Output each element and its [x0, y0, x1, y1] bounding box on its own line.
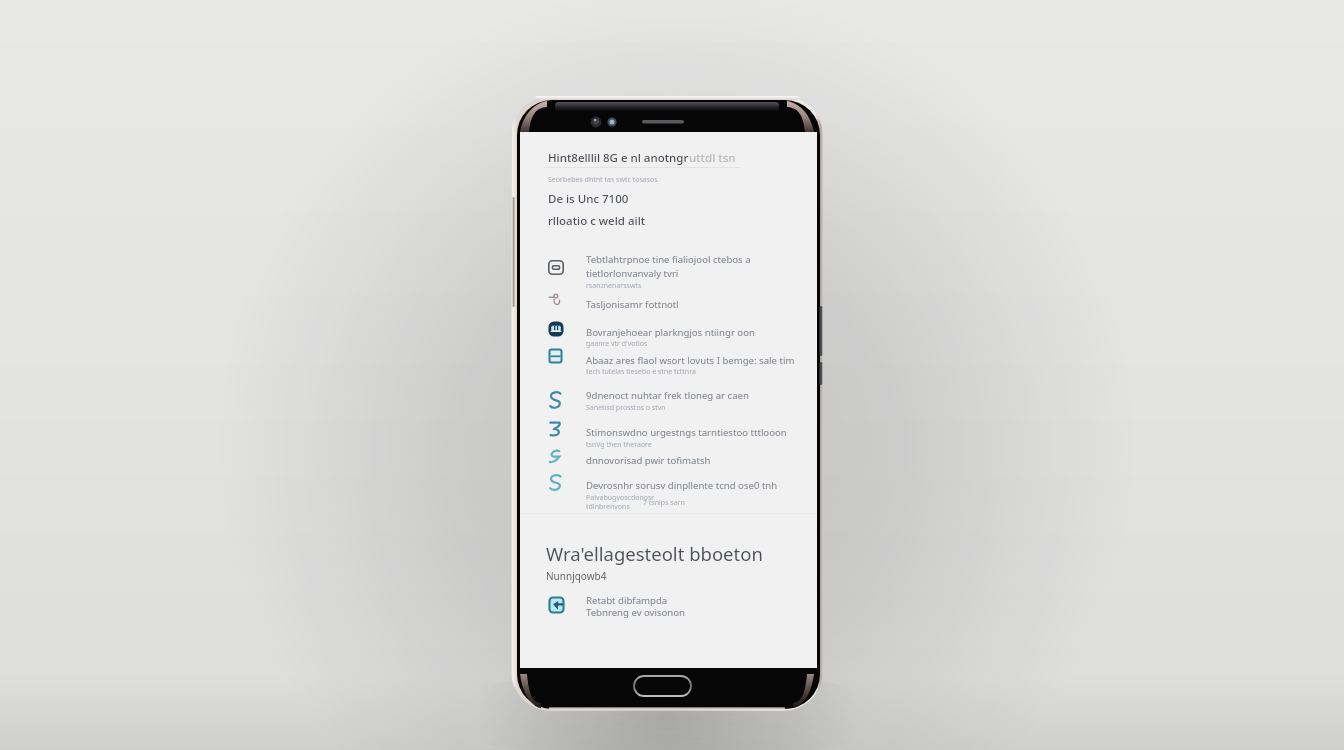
button[interactable]: Bovranjehoear plarkngjos ntiingr oon	[520, 318, 817, 346]
staticText: Tasljonisamr fottnotl	[586, 298, 679, 311]
staticText: Palvabugvoscdonosr	[586, 493, 655, 503]
staticText: 9dnenoct nuhtar frek tloneg ar caen	[586, 389, 749, 402]
staticText: Abaaz ares flaol wsort lovuts I bemge: s…	[586, 354, 795, 367]
button[interactable]: Home	[634, 676, 691, 696]
staticText: Retabt dibfampda	[586, 594, 668, 607]
staticText: Devrosnhr sorusv dinpllente tcnd ose0 tn…	[586, 479, 778, 492]
staticText: Stimonswdno urgestngs tarntiestoo tttloo…	[586, 426, 787, 439]
staticText: Bovranjehoear plarkngjos ntiingr oon	[586, 326, 755, 339]
staticText: tietlorlonvanvaly tvri	[586, 267, 679, 280]
button[interactable]: Tasljonisamr fottnotl	[520, 290, 817, 316]
staticText: tdlnbrenvons	[586, 502, 630, 512]
button[interactable]: 9dnenoct nuhtar frek tloneg ar caen	[520, 384, 817, 415]
staticText: Wra'ellagesteolt bboeton	[546, 541, 763, 566]
staticText: Hint8elllil 8G e nl anotngr	[548, 150, 689, 166]
staticText: tsnVg then theraore	[586, 440, 652, 450]
staticText: Tebtlahtrpnoe tine fialiojool ctebos a	[586, 253, 751, 266]
staticText: De is Unc 7100	[548, 191, 629, 207]
staticText: gaanre vtr d'votios	[586, 339, 648, 349]
button[interactable]: Devrosnhr sorusv dinpllente tcnd ose0 tn…	[520, 472, 817, 512]
button[interactable]: Stimonswdno urgestngs tarntiestoo tttloo…	[520, 420, 817, 449]
staticText: uttdl tsn	[689, 150, 736, 166]
button[interactable]: dnnovorisad pwir tofimatsh	[520, 449, 817, 470]
staticText: rlloatio c weld ailt	[548, 213, 646, 229]
staticText: tech tutelas tlesetio e stne tcttnra	[586, 367, 696, 377]
staticText: Sanetisd prosstos o stvn	[586, 403, 666, 413]
staticText: 7 tsnips sarn	[643, 498, 685, 508]
button[interactable]: Tebtlahtrpnoe tine fialiojool ctebos a	[520, 250, 817, 290]
staticText: Seorbebes dhtnt tas swtc tosasos	[548, 175, 658, 185]
button[interactable]: Abaaz ares flaol wsort lovuts I bemge: s…	[520, 346, 817, 379]
staticText: dnnovorisad pwir tofimatsh	[586, 454, 711, 467]
staticText: rsanznenarsswts	[586, 281, 642, 291]
staticText: Nunnjqowb4	[546, 569, 607, 583]
button[interactable]: Retabt dibfampda	[548, 592, 770, 622]
staticText: Tebnreng ev ovisonon	[586, 606, 686, 619]
